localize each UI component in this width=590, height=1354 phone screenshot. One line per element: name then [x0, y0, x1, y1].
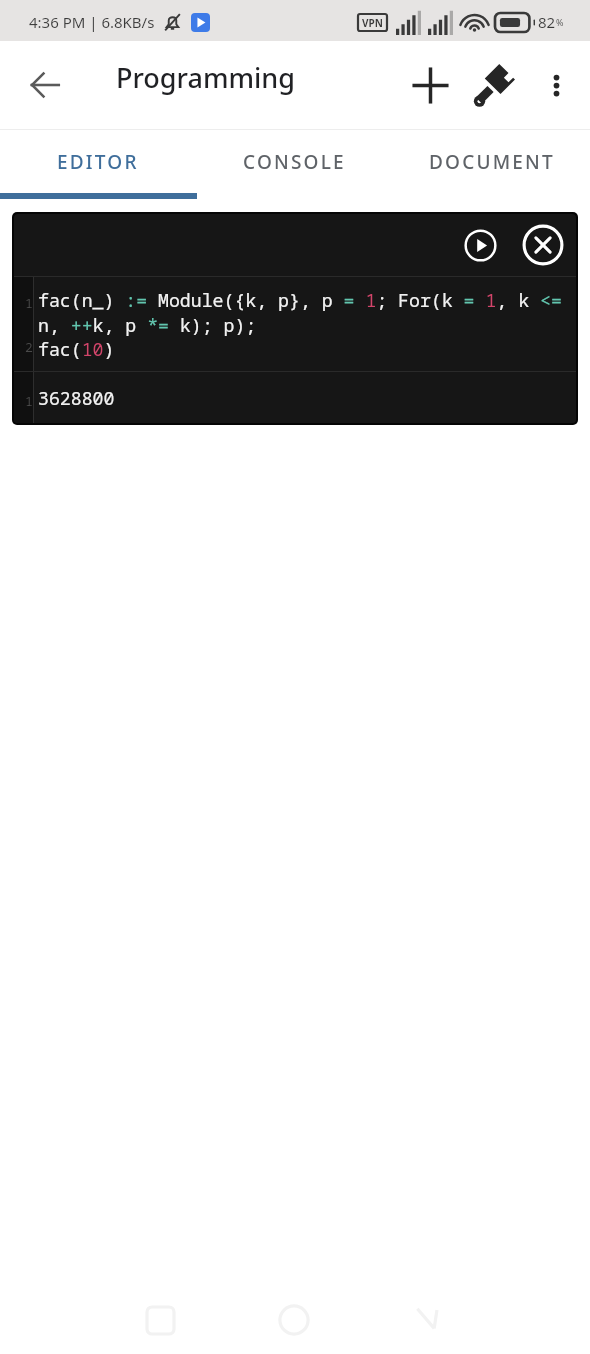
staticText: Programming: [116, 59, 296, 96]
staticText: 3628800: [38, 386, 115, 411]
button[interactable]: Theme: [466, 57, 522, 113]
staticText: DOCUMENT: [429, 149, 555, 175]
button[interactable]: Add: [402, 57, 458, 113]
button[interactable]: Close: [520, 222, 566, 268]
staticText: EDITOR: [57, 149, 139, 175]
button[interactable]: Home: [268, 1294, 320, 1346]
staticText: fac(n_) := Module({k, p}, p = 1; For(k =…: [38, 288, 576, 337]
staticText: CONSOLE: [243, 149, 346, 175]
staticText: fac(10): [38, 337, 115, 362]
staticText: 2: [25, 338, 33, 356]
button[interactable]: More options: [532, 61, 580, 109]
staticText: 4:36 PM | 6.8KB/s: [29, 12, 155, 32]
button[interactable]: DOCUMENT: [393, 130, 590, 193]
staticText: %: [556, 16, 564, 28]
button[interactable]: CONSOLE: [196, 130, 393, 193]
staticText: 82: [538, 12, 556, 32]
staticText: 1: [25, 294, 33, 312]
button[interactable]: EDITOR: [0, 130, 196, 193]
staticText: VPN: [362, 16, 383, 30]
button[interactable]: Run: [457, 222, 503, 268]
staticText: 1: [25, 392, 33, 410]
button[interactable]: Recents: [134, 1294, 186, 1346]
button[interactable]: Back: [17, 57, 73, 113]
